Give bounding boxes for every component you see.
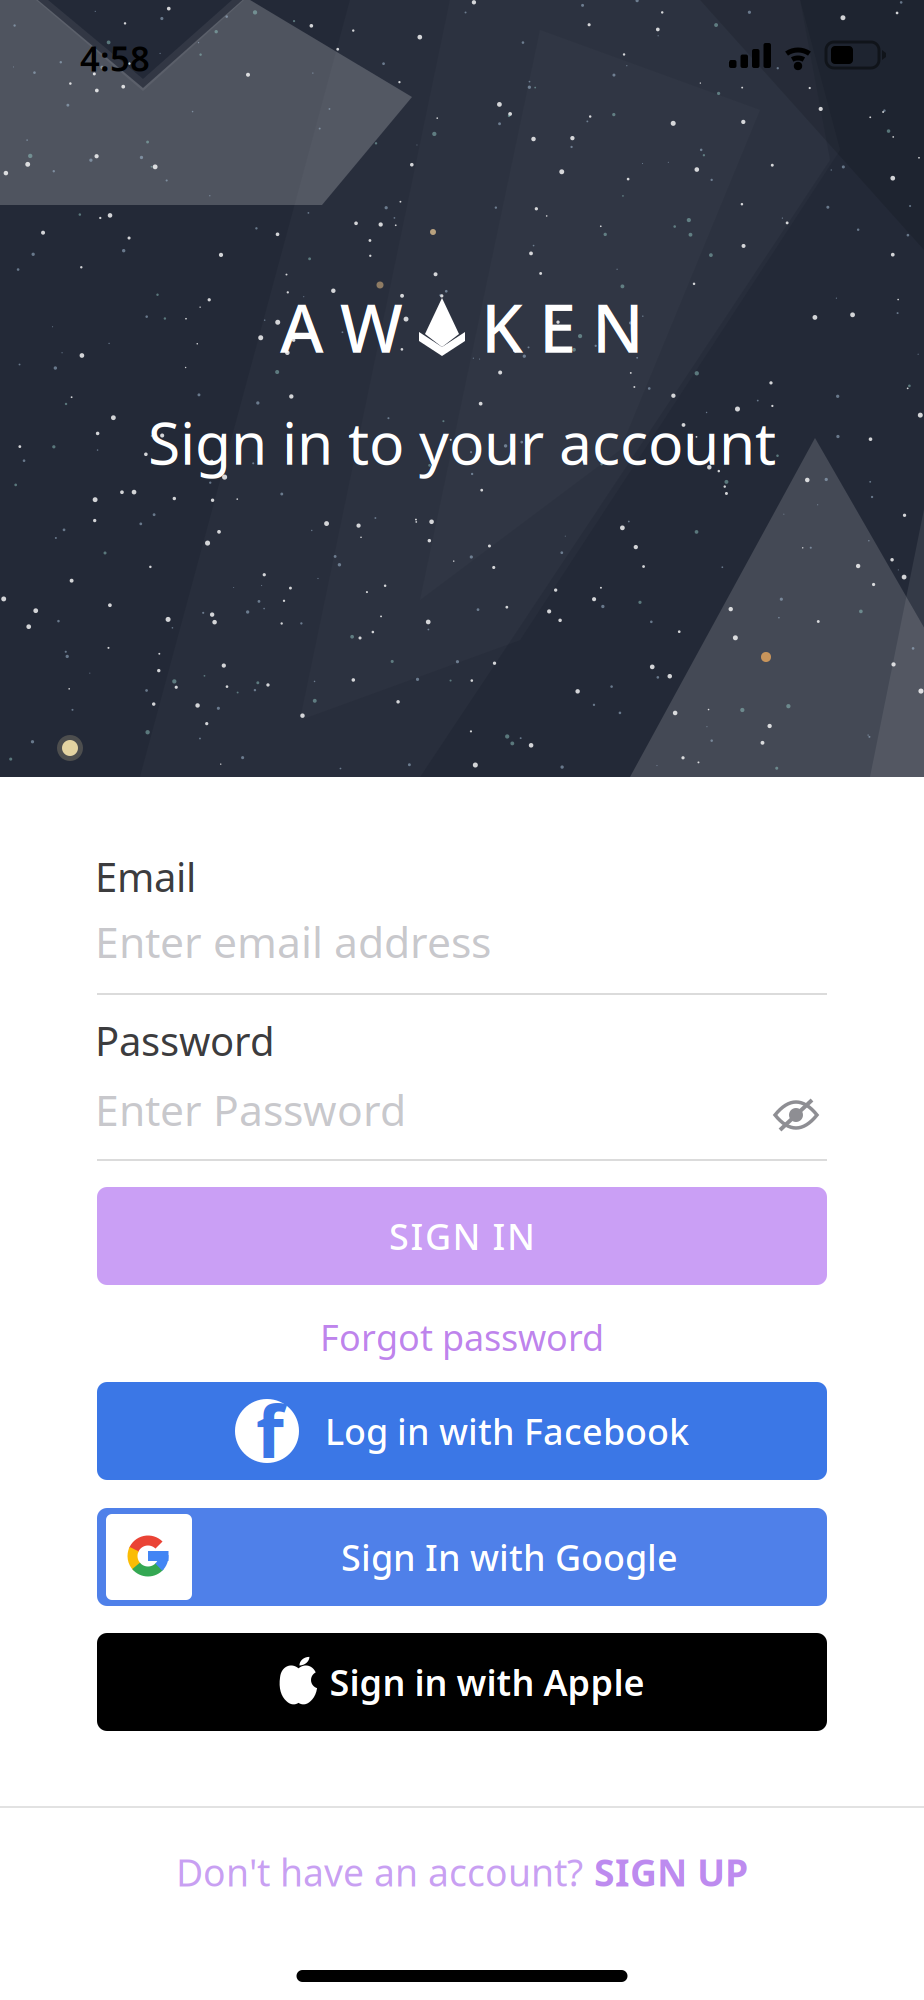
staticText: Forgot password: [320, 1313, 604, 1361]
staticText: Log in with Facebook: [325, 1407, 689, 1455]
staticText: Password: [95, 1014, 275, 1067]
staticText: E: [539, 283, 576, 371]
staticText: 4:58: [80, 35, 150, 81]
staticText: SIGN UP: [594, 1847, 748, 1897]
button[interactable]: SIGN IN: [97, 1187, 827, 1285]
staticText: K: [481, 283, 523, 371]
staticText: Sign In with Google: [341, 1533, 678, 1581]
staticText: f: [256, 1382, 284, 1478]
button[interactable]: Forgot password: [320, 1313, 604, 1361]
button[interactable]: Show password: [776, 1095, 816, 1135]
staticText: Sign in with Apple: [329, 1658, 644, 1706]
button[interactable]: Sign In with Google: [97, 1508, 827, 1606]
staticText: Sign in to your account: [148, 403, 776, 481]
button[interactable]: f: [97, 1382, 827, 1480]
staticText: Enter email address: [95, 913, 491, 970]
button[interactable]: Sign in with Apple: [97, 1633, 827, 1731]
staticText: Don't have an account?: [176, 1847, 583, 1897]
button[interactable]: SIGN UP: [594, 1847, 748, 1897]
staticText: Enter Password: [95, 1081, 406, 1138]
staticText: A: [280, 283, 324, 371]
staticText: N: [592, 283, 644, 371]
staticText: W: [340, 283, 403, 371]
staticText: Email: [95, 850, 196, 903]
staticText: SIGN IN: [389, 1212, 535, 1260]
